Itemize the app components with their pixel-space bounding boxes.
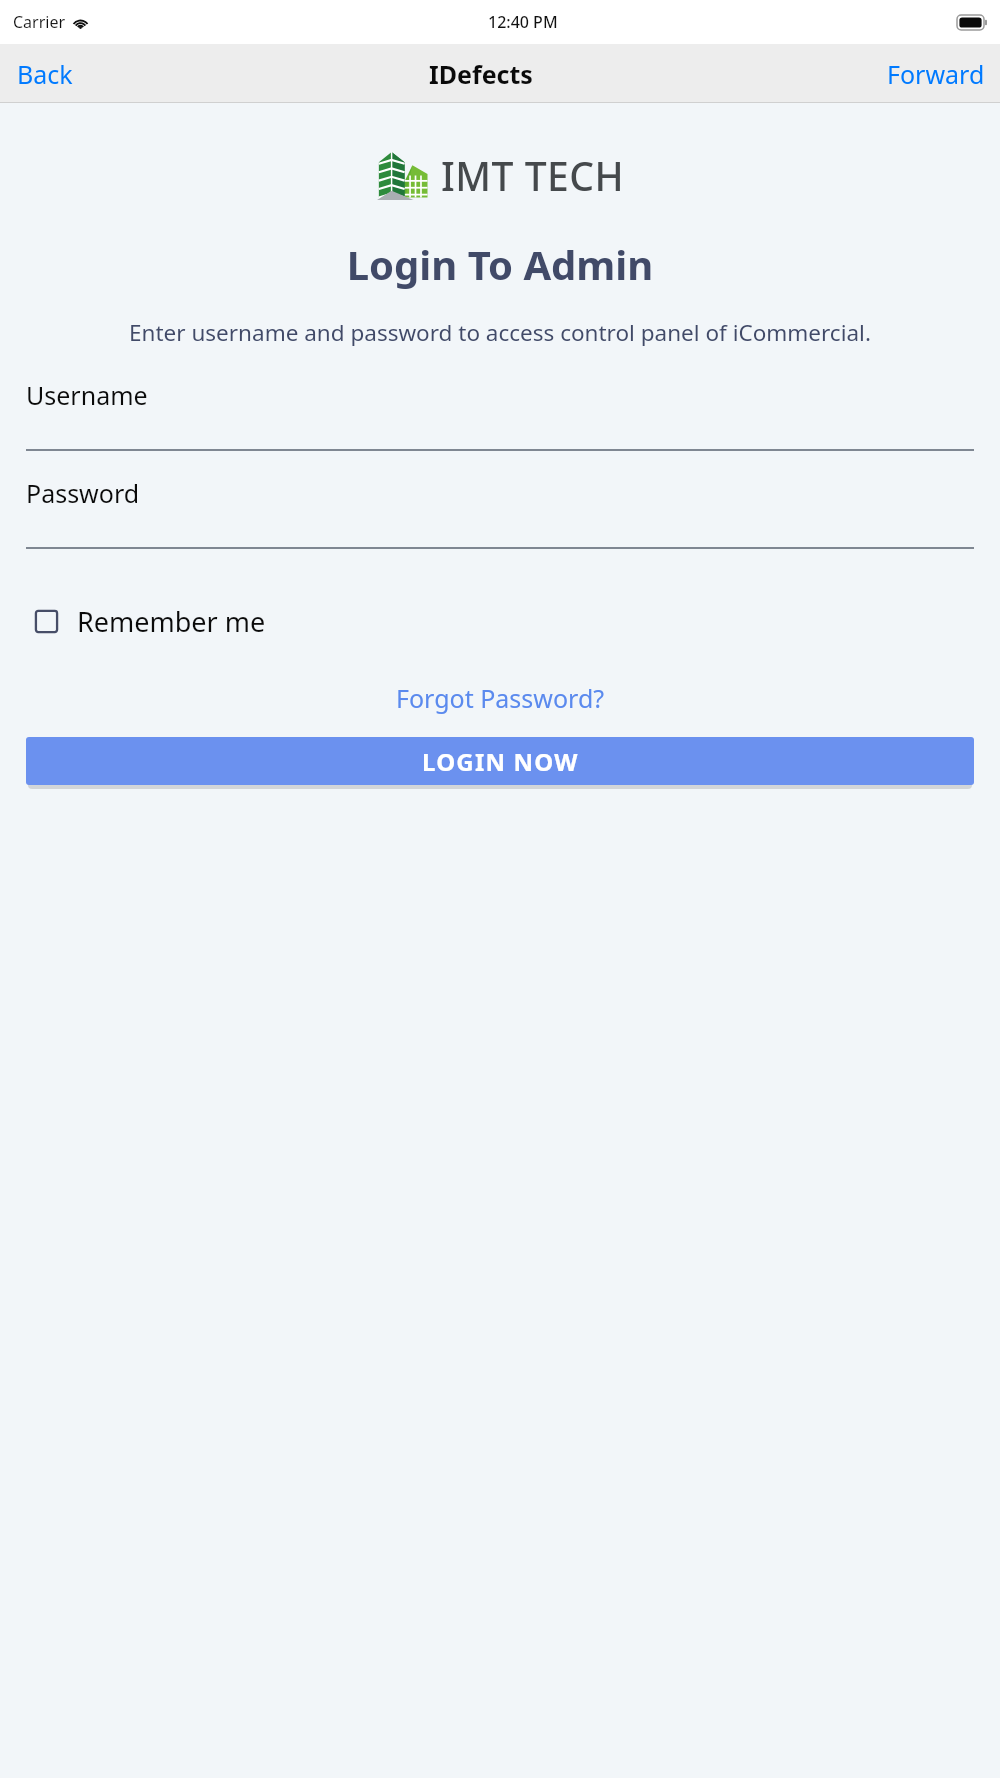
button[interactable]: Password <box>0 476 1000 549</box>
staticText: Password <box>26 476 140 510</box>
staticText: Back <box>17 57 73 91</box>
staticText: Forgot Password? <box>396 681 605 715</box>
staticText: Forward <box>887 57 985 91</box>
button[interactable]: Username <box>0 378 1000 451</box>
button[interactable]: Forgot Password? <box>382 675 619 721</box>
button[interactable]: LOGIN NOW <box>26 737 974 785</box>
button[interactable]: Forward <box>872 49 1000 99</box>
staticText: Carrier <box>13 11 66 33</box>
button[interactable]: Remember me <box>29 595 272 648</box>
staticText: Enter username and password to access co… <box>35 317 965 348</box>
staticText: 12:40 PM <box>488 11 558 33</box>
staticText: Login To Admin <box>0 237 1000 291</box>
button[interactable]: Back <box>0 49 90 99</box>
staticText: Username <box>26 378 148 412</box>
staticText: IDefects <box>429 57 533 91</box>
staticText: IMT TECH <box>441 149 625 202</box>
staticText: LOGIN NOW <box>422 745 579 778</box>
staticText: Remember me <box>77 603 266 640</box>
